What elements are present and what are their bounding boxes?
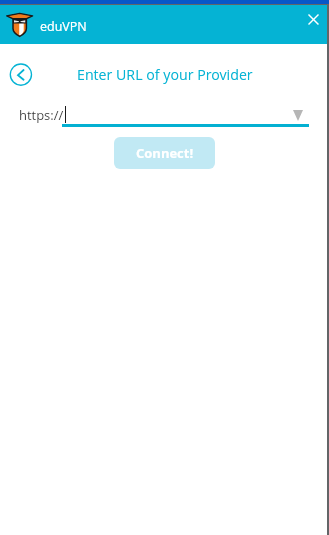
staticText: Connect! <box>136 144 194 162</box>
staticText: https:// <box>19 106 64 124</box>
button[interactable]: Back <box>9 63 33 87</box>
button[interactable]: Close <box>298 6 328 32</box>
staticText: eduVPN <box>40 18 87 35</box>
button[interactable]: Show provider list <box>293 110 303 121</box>
staticText: Enter URL of your Provider <box>77 65 253 84</box>
button[interactable]: Connect! <box>114 137 215 169</box>
